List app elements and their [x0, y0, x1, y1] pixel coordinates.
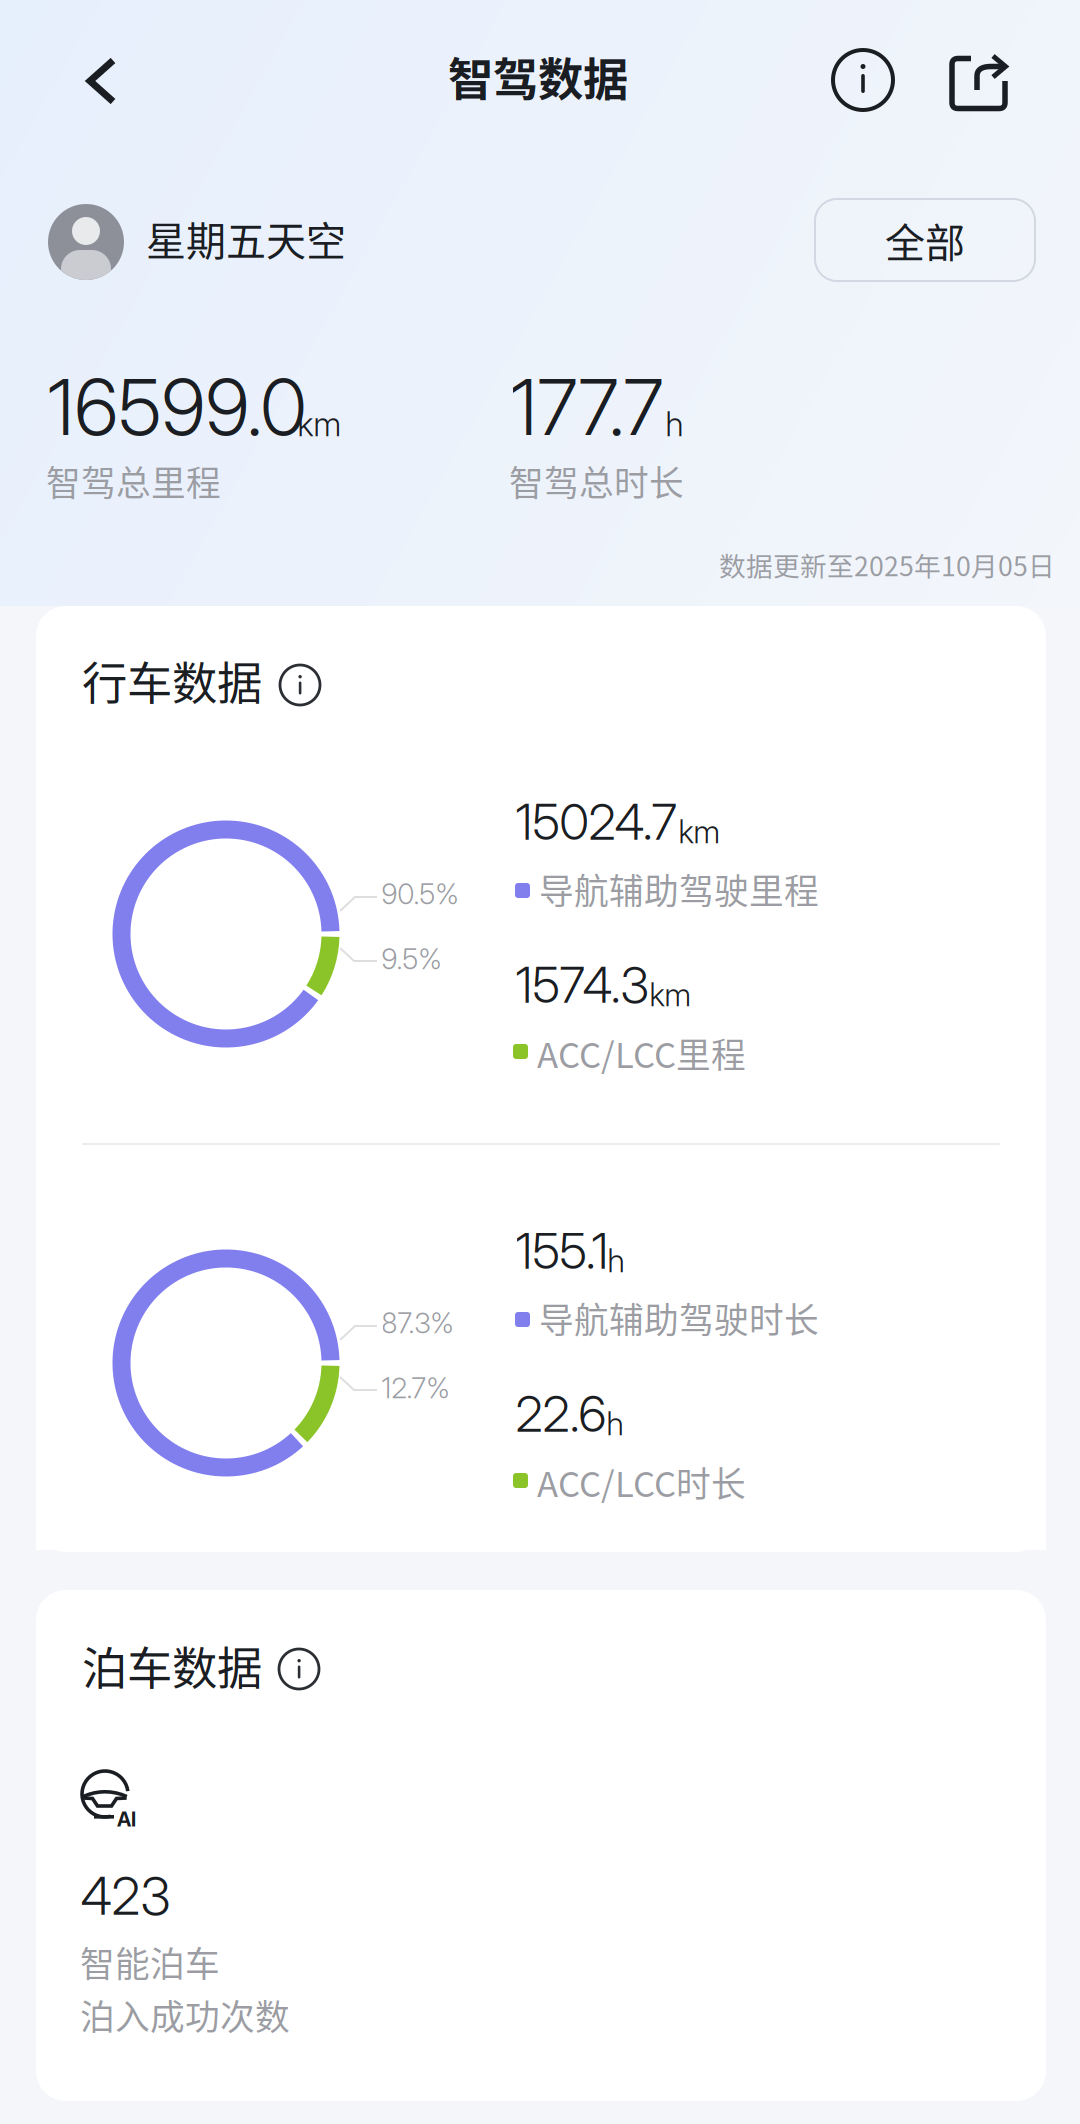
staticText: 泊车数据 — [82, 1633, 262, 1698]
staticText: ACC/LCC时长 — [537, 1457, 746, 1507]
staticText: 智驾总时长 — [509, 456, 684, 506]
staticText: 智驾总里程 — [46, 456, 221, 506]
button[interactable]: Share — [940, 40, 1020, 120]
staticText: 数据更新至2025年10月05日 — [719, 545, 1055, 584]
staticText: 22.6 — [515, 1384, 606, 1444]
button[interactable]: Info — [823, 41, 903, 121]
button[interactable]: 全部 — [815, 199, 1035, 281]
button[interactable]: Back — [61, 41, 141, 121]
staticText: 行车数据 — [82, 648, 262, 713]
staticText: ACC/LCC里程 — [537, 1028, 746, 1078]
staticText: km — [297, 404, 341, 444]
staticText: 智驾数据 — [448, 44, 628, 109]
staticText: km — [649, 975, 690, 1014]
staticText: 155.1 — [515, 1221, 608, 1281]
staticText: AI — [117, 1807, 136, 1831]
staticText: 177.7 — [510, 360, 663, 454]
staticText: 90.5% — [381, 877, 458, 911]
staticText: 导航辅助驾驶时长 — [539, 1293, 819, 1343]
staticText: 星期五天空 — [146, 209, 346, 267]
staticText: 12.7% — [381, 1371, 449, 1405]
staticText: 智能泊车 — [80, 1937, 220, 1987]
staticText: h — [665, 404, 683, 444]
staticText: 87.3% — [381, 1306, 453, 1340]
staticText: 泊入成功次数 — [80, 1990, 290, 2040]
staticText: 423 — [80, 1864, 170, 1927]
staticText: 导航辅助驾驶里程 — [539, 864, 819, 914]
staticText: km — [678, 812, 719, 851]
staticText: 1574.3 — [515, 955, 648, 1015]
staticText: h — [607, 1241, 624, 1280]
staticText: 16599.0 — [47, 360, 306, 454]
staticText: 9.5% — [381, 942, 441, 976]
staticText: 15024.7 — [515, 792, 676, 852]
staticText: 全部 — [885, 211, 965, 269]
staticText: h — [606, 1404, 623, 1443]
